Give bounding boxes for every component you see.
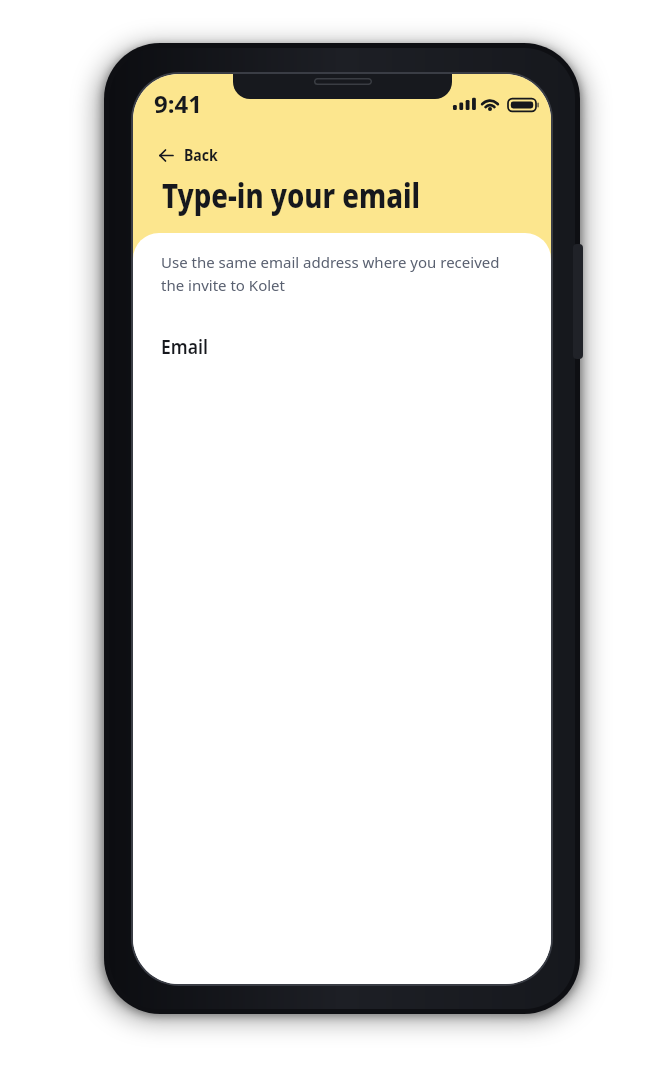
button[interactable]: Email (161, 333, 523, 360)
staticText: Type-in your email (162, 173, 421, 218)
staticText: Email (161, 333, 208, 360)
button[interactable]: Back (147, 138, 235, 172)
staticText: 9:41 (154, 87, 202, 120)
staticText: Back (184, 144, 218, 166)
staticText: Use the same email address where you rec… (161, 252, 500, 295)
